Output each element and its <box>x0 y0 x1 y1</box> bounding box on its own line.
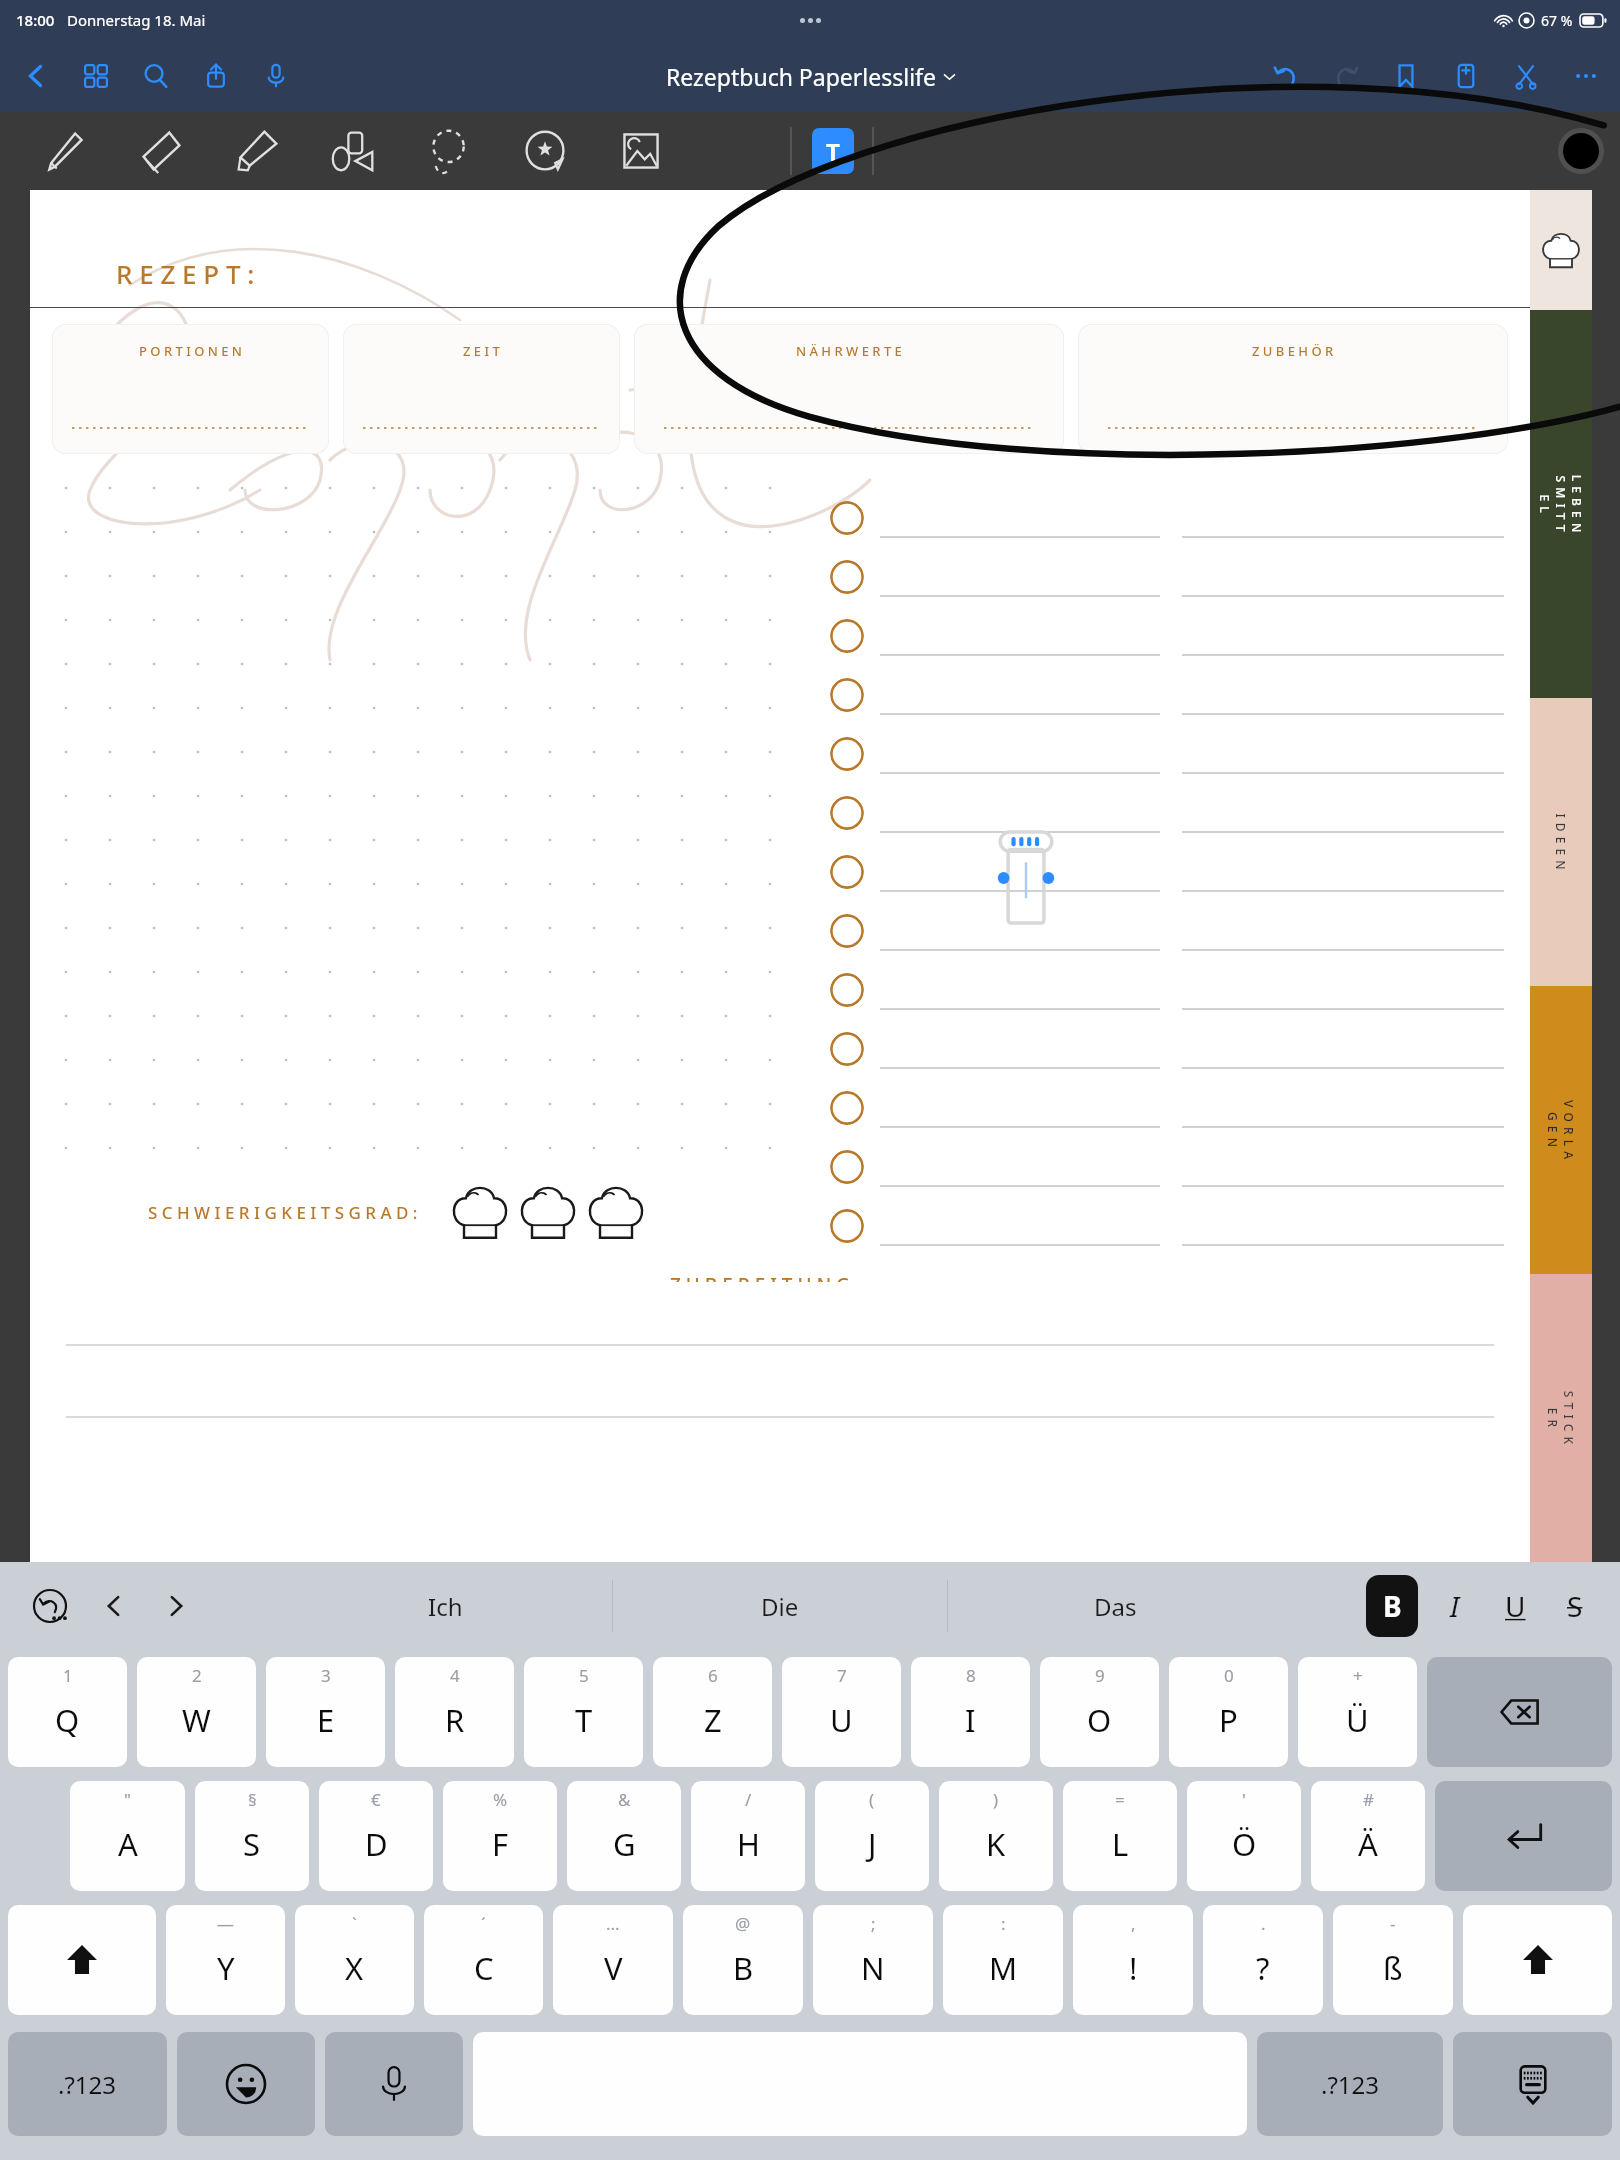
button[interactable]: U <box>1492 1575 1538 1637</box>
button[interactable]: Ingredient checkbox <box>830 1150 864 1184</box>
button[interactable]: Ingredient checkbox <box>830 1209 864 1243</box>
button[interactable]: N Ä H R W E R T E <box>634 324 1064 454</box>
button[interactable]: = <box>1063 1781 1177 1891</box>
button[interactable]: Ingredient checkbox <box>830 855 864 889</box>
button[interactable]: Die <box>613 1562 947 1650</box>
button[interactable]: Difficulty hat <box>584 1182 648 1242</box>
button[interactable]: LEBENSMITTEL <box>1530 310 1592 698</box>
button[interactable]: .?123 <box>1257 2032 1443 2136</box>
button[interactable]: More <box>1568 58 1604 94</box>
button[interactable]: 0 <box>1169 1657 1288 1767</box>
button[interactable]: : <box>943 1905 1063 2015</box>
button[interactable]: Eraser <box>134 124 188 178</box>
button[interactable]: - <box>1333 1905 1453 2015</box>
button[interactable]: Cut <box>1508 58 1544 94</box>
button[interactable]: Ingredient checkbox <box>830 973 864 1007</box>
button[interactable]: Ingredient checkbox <box>830 1091 864 1125</box>
button[interactable]: Emoji <box>177 2032 315 2136</box>
button[interactable]: Ingredient checkbox <box>830 560 864 594</box>
button[interactable]: ´ <box>424 1905 543 2015</box>
button[interactable]: ` <box>295 1905 414 2015</box>
button[interactable]: Ingredient checkbox <box>830 796 864 830</box>
button[interactable]: 2 <box>137 1657 256 1767</box>
button[interactable]: / <box>691 1781 805 1891</box>
button[interactable]: 5 <box>524 1657 643 1767</box>
button[interactable]: Share <box>198 58 234 94</box>
button[interactable]: # <box>1311 1781 1425 1891</box>
button[interactable]: Pen <box>38 124 92 178</box>
button[interactable]: Undo typing <box>26 1582 74 1630</box>
button[interactable]: Sticker <box>518 124 572 178</box>
button[interactable]: — <box>166 1905 285 2015</box>
button[interactable]: Rezepte tab <box>1530 190 1592 310</box>
button[interactable]: IDEEN <box>1530 698 1592 986</box>
button[interactable]: Ich <box>278 1562 612 1650</box>
button[interactable]: Difficulty hat <box>448 1182 512 1242</box>
button[interactable]: P O R T I O N E N <box>52 324 329 454</box>
button[interactable]: Ingredient checkbox <box>830 501 864 535</box>
button[interactable]: ; <box>813 1905 933 2015</box>
button[interactable]: ( <box>815 1781 929 1891</box>
button[interactable]: Colour <box>1558 128 1604 174</box>
staticText: ? <box>1256 1947 1270 1989</box>
button[interactable]: Add page <box>1448 58 1484 94</box>
button[interactable]: % <box>443 1781 557 1891</box>
button[interactable]: 6 <box>653 1657 772 1767</box>
button[interactable]: § <box>195 1781 309 1891</box>
button[interactable]: Ingredient checkbox <box>830 1032 864 1066</box>
button[interactable]: Text tool <box>812 128 854 174</box>
button[interactable]: Z E I T <box>343 324 620 454</box>
button[interactable]: 9 <box>1040 1657 1159 1767</box>
button[interactable]: Redo <box>1328 58 1364 94</box>
button[interactable]: STICKER <box>1530 1274 1592 1562</box>
button[interactable]: € <box>319 1781 433 1891</box>
button[interactable]: Ingredient checkbox <box>830 619 864 653</box>
button[interactable]: Dictate <box>325 2032 463 2136</box>
button[interactable]: Back <box>18 58 54 94</box>
button[interactable]: Shapes <box>326 124 380 178</box>
button[interactable]: B <box>1366 1575 1418 1637</box>
button[interactable]: backspace <box>1427 1657 1612 1767</box>
button[interactable]: + <box>1298 1657 1417 1767</box>
button[interactable]: " <box>70 1781 185 1891</box>
button[interactable]: Undo <box>1268 58 1304 94</box>
button[interactable]: Record audio <box>258 58 294 94</box>
button[interactable]: Search <box>138 58 174 94</box>
button[interactable]: Image <box>614 124 668 178</box>
button[interactable]: Ingredient checkbox <box>830 914 864 948</box>
button[interactable]: Highlighter <box>230 124 284 178</box>
button[interactable]: I <box>1432 1575 1478 1637</box>
button[interactable]: shift <box>1463 1905 1612 2015</box>
button[interactable]: shift <box>8 1905 156 2015</box>
button[interactable]: ... <box>553 1905 673 2015</box>
button[interactable]: 4 <box>395 1657 514 1767</box>
button[interactable]: 8 <box>911 1657 1030 1767</box>
button[interactable]: Z U B E H Ö R <box>1078 324 1508 454</box>
staticText: 0 <box>1224 1664 1234 1687</box>
button[interactable]: @ <box>683 1905 803 2015</box>
button[interactable]: Ingredient checkbox <box>830 678 864 712</box>
button[interactable]: S <box>1552 1575 1598 1637</box>
button[interactable]: .?123 <box>8 2032 167 2136</box>
button[interactable]: , <box>1073 1905 1193 2015</box>
button[interactable]: . <box>1203 1905 1323 2015</box>
button[interactable]: Das <box>948 1562 1282 1650</box>
button[interactable]: Previous <box>92 1584 136 1628</box>
button[interactable]: Difficulty hat <box>516 1182 580 1242</box>
button[interactable]: Bookmark <box>1388 58 1424 94</box>
button[interactable]: & <box>567 1781 681 1891</box>
button[interactable]: 7 <box>782 1657 901 1767</box>
button[interactable]: Rezeptbuch Paperlesslife <box>666 61 955 92</box>
button[interactable]: Next <box>154 1584 198 1628</box>
button[interactable]: Ingredient checkbox <box>830 737 864 771</box>
button[interactable]: ' <box>1187 1781 1301 1891</box>
button[interactable]: 3 <box>266 1657 385 1767</box>
button[interactable]: Thumbnails <box>78 58 114 94</box>
button[interactable]: Lasso <box>422 124 476 178</box>
button[interactable]: 1 <box>8 1657 127 1767</box>
button[interactable]: VORLAGEN <box>1530 986 1592 1274</box>
button[interactable]: ) <box>939 1781 1053 1891</box>
button[interactable]: Hide keyboard <box>1453 2032 1612 2136</box>
button[interactable]: return <box>1435 1781 1612 1891</box>
